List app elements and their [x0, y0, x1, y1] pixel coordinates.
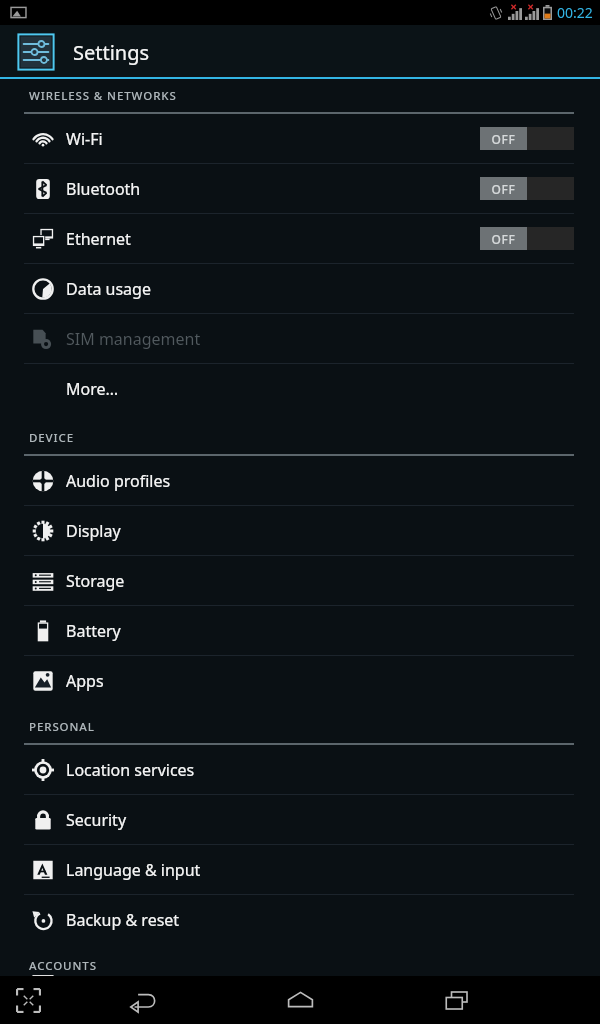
staticText: DEVICE — [29, 430, 75, 446]
button[interactable]: Back — [116, 976, 170, 1024]
staticText: Location services — [66, 759, 195, 781]
staticText: Bluetooth — [66, 178, 141, 200]
staticText: Data usage — [66, 278, 151, 300]
button[interactable]: Bluetooth — [0, 164, 600, 213]
staticText: More… — [66, 378, 119, 400]
button[interactable]: Wi-Fi — [0, 114, 600, 163]
staticText: OFF — [491, 231, 516, 247]
button[interactable]: Toggle off — [480, 127, 574, 150]
staticText: Security — [66, 809, 127, 831]
button[interactable]: Settings — [14, 30, 58, 74]
button[interactable]: Location services — [0, 745, 600, 794]
staticText: SIM management — [66, 328, 201, 350]
button[interactable]: More… — [0, 364, 600, 413]
button[interactable]: SIM management — [0, 314, 600, 363]
staticText: OFF — [491, 131, 516, 147]
button[interactable]: Security — [0, 795, 600, 844]
other: Screenshot notification — [10, 4, 27, 21]
button[interactable]: Recent apps — [430, 976, 484, 1024]
button[interactable]: Battery — [0, 606, 600, 655]
staticText: Display — [66, 520, 121, 542]
staticText: WIRELESS & NETWORKS — [29, 88, 177, 104]
button[interactable]: Home — [273, 976, 327, 1024]
button[interactable]: Shrink screen — [7, 979, 49, 1021]
staticText: Battery — [66, 620, 121, 642]
button[interactable]: Language & input — [0, 845, 600, 894]
staticText: ACCOUNTS — [29, 958, 97, 974]
staticText: Wi-Fi — [66, 128, 103, 150]
button[interactable]: Data usage — [0, 264, 600, 313]
staticText: Settings — [73, 39, 150, 66]
staticText: Audio profiles — [66, 470, 171, 492]
button[interactable]: Toggle off — [480, 177, 574, 200]
staticText: 00:22 — [557, 3, 593, 22]
button[interactable]: Toggle off — [480, 227, 574, 250]
button[interactable]: Audio profiles — [0, 456, 600, 505]
staticText: OFF — [491, 181, 516, 197]
staticText: Apps — [66, 670, 104, 692]
staticText: PERSONAL — [29, 719, 95, 735]
button[interactable]: Storage — [0, 556, 600, 605]
staticText: Backup & reset — [66, 909, 180, 931]
staticText: Ethernet — [66, 228, 131, 250]
button[interactable]: Display — [0, 506, 600, 555]
button[interactable]: Ethernet — [0, 214, 600, 263]
staticText: Storage — [66, 570, 125, 592]
button[interactable]: Apps — [0, 656, 600, 705]
staticText: Language & input — [66, 859, 201, 881]
button[interactable]: Backup & reset — [0, 895, 600, 944]
